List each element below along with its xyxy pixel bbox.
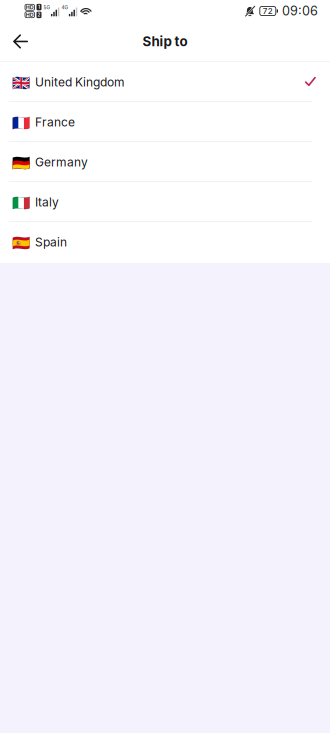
staticText: Germany	[35, 155, 88, 169]
button[interactable]: 🇫🇷	[0, 102, 330, 141]
staticText: United Kingdom	[35, 75, 125, 89]
staticText: Ship to	[142, 33, 187, 49]
staticText: HD	[26, 4, 34, 11]
button[interactable]: 🇪🇸	[0, 222, 330, 261]
button[interactable]: 🇩🇪	[0, 142, 330, 181]
staticText: France	[35, 115, 75, 129]
staticText: 🇪🇸	[12, 234, 30, 252]
staticText: Italy	[35, 195, 59, 209]
staticText: 🇬🇧	[12, 74, 30, 92]
staticText: 5G	[43, 4, 50, 10]
staticText: 4G	[61, 4, 68, 10]
staticText: 2	[37, 12, 40, 18]
button[interactable]: 🇬🇧	[0, 62, 330, 101]
button[interactable]: Back	[0, 22, 42, 61]
staticText: 72	[263, 6, 273, 16]
staticText: Spain	[35, 235, 67, 249]
staticText: HD	[26, 11, 34, 18]
staticText: 09:06	[282, 3, 318, 19]
staticText: 🇮🇹	[12, 194, 30, 212]
staticText: 🇩🇪	[12, 154, 30, 172]
staticText: 1	[38, 4, 40, 10]
button[interactable]: 🇮🇹	[0, 182, 330, 221]
staticText: 🇫🇷	[12, 114, 30, 132]
